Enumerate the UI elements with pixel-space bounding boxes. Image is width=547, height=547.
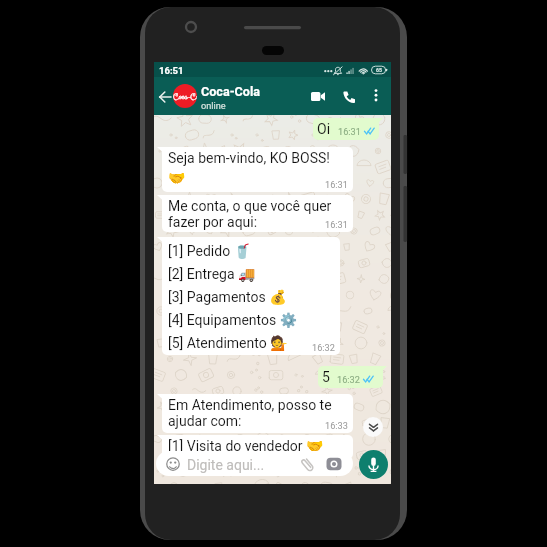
button[interactable]: More options — [366, 84, 386, 108]
button[interactable]: Camera — [325, 455, 342, 472]
staticText: 5 — [322, 369, 330, 385]
staticText: online — [201, 100, 226, 111]
button[interactable]: Coca-Cola — [201, 84, 311, 111]
staticText: [1] Pedido 🥤 [2] Entrega 🚚 [3] Pagamento… — [168, 243, 298, 351]
button[interactable]: Me conta, o que você quer fazer por aqui… — [162, 195, 353, 232]
staticText: Seja bem-vindo, KO BOSS! 🤝 — [168, 150, 330, 186]
staticText: 16:33 — [325, 420, 348, 431]
button[interactable]: Em Atendimento, posso te ajudar com: — [162, 394, 353, 433]
staticText: Me conta, o que você quer fazer por aqui… — [168, 198, 332, 230]
button[interactable]: Emoji — [164, 455, 182, 473]
button[interactable]: Voice call — [336, 84, 361, 109]
button[interactable]: Oi — [313, 118, 379, 140]
staticText: Coca-Cola — [173, 91, 197, 102]
staticText: Coca-Cola — [201, 84, 261, 99]
staticText: Digite aqui... — [187, 457, 265, 473]
button[interactable]: 5 — [318, 366, 383, 388]
staticText: 16:32 — [337, 374, 360, 385]
staticText: 16:31 — [325, 219, 348, 230]
button[interactable]: Scroll to bottom — [363, 417, 383, 437]
button[interactable]: Back — [155, 87, 174, 106]
staticText: 65 — [376, 67, 382, 73]
button[interactable]: [1] Visita do vendedor 🤝 — [162, 435, 353, 459]
button[interactable]: Seja bem-vindo, KO BOSS! 🤝 — [162, 147, 353, 192]
button[interactable]: [1] Pedido 🥤 [2] Entrega 🚚 [3] Pagamento… — [162, 237, 340, 355]
staticText: Em Atendimento, posso te ajudar com: — [168, 397, 332, 429]
staticText: Oi — [317, 121, 331, 137]
button[interactable]: Contact photo — [173, 84, 197, 108]
staticText: 16:31 — [325, 179, 348, 190]
button[interactable]: Video call — [305, 84, 330, 109]
staticText: 16:32 — [312, 342, 335, 353]
button[interactable]: Attach — [298, 455, 317, 474]
staticText: 16:51 — [159, 65, 184, 76]
button[interactable]: Emoji — [156, 451, 353, 476]
staticText: 16:31 — [338, 126, 361, 137]
button[interactable]: Voice message — [359, 450, 388, 479]
staticText: [1] Visita do vendedor 🤝 — [168, 438, 324, 454]
